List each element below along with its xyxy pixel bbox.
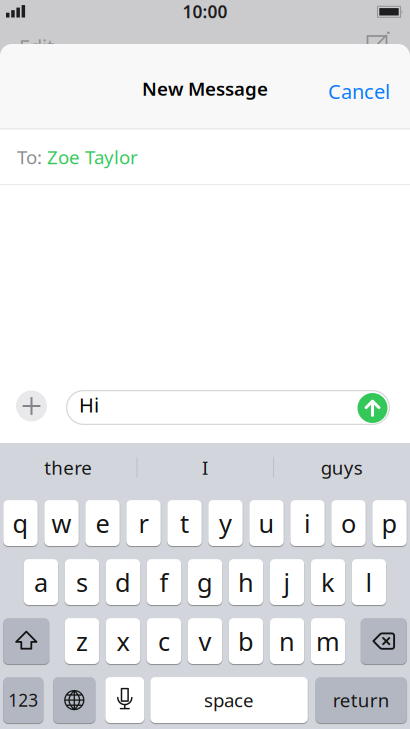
button[interactable]: g xyxy=(188,559,222,605)
button[interactable]: l xyxy=(352,559,386,605)
button[interactable]: j xyxy=(270,559,304,605)
staticText: b xyxy=(238,624,254,658)
button[interactable]: there xyxy=(3,445,133,489)
staticText: e xyxy=(95,506,109,540)
button[interactable]: More options xyxy=(16,390,47,421)
button[interactable]: Delete xyxy=(361,618,407,664)
staticText: x xyxy=(116,624,129,658)
staticText: t xyxy=(180,506,189,540)
staticText: Zoe Taylor xyxy=(47,145,138,169)
staticText: 10:00 xyxy=(182,0,227,23)
button[interactable]: Send xyxy=(357,393,387,423)
staticText: j xyxy=(283,565,290,599)
staticText: u xyxy=(258,506,274,540)
button[interactable]: r xyxy=(126,500,161,546)
button[interactable]: Hi xyxy=(66,390,390,425)
staticText: h xyxy=(238,565,254,599)
staticText: a xyxy=(34,565,48,599)
button[interactable]: space xyxy=(150,677,308,723)
button[interactable]: o xyxy=(331,500,366,546)
button[interactable]: b xyxy=(229,618,263,664)
staticText: n xyxy=(279,624,295,658)
button[interactable]: e xyxy=(85,500,120,546)
staticText: k xyxy=(321,565,335,599)
staticText: o xyxy=(341,506,356,540)
staticText: guys xyxy=(321,455,363,480)
staticText: z xyxy=(76,624,88,658)
staticText: i xyxy=(304,506,311,540)
button[interactable]: w xyxy=(44,500,79,546)
button[interactable]: Shift xyxy=(3,618,49,664)
button[interactable]: h xyxy=(229,559,263,605)
button[interactable]: n xyxy=(270,618,304,664)
staticText: w xyxy=(51,506,71,540)
button[interactable]: a xyxy=(24,559,58,605)
button[interactable]: t xyxy=(167,500,202,546)
staticText: Edit xyxy=(19,33,54,60)
staticText: To: xyxy=(17,145,42,169)
staticText: g xyxy=(197,565,213,599)
button[interactable]: d xyxy=(106,559,140,605)
button[interactable]: p xyxy=(372,500,407,546)
staticText: p xyxy=(381,506,397,540)
button[interactable]: f xyxy=(147,559,181,605)
button[interactable]: Next keyboard xyxy=(53,677,95,723)
button[interactable]: q xyxy=(3,500,38,546)
staticText: l xyxy=(365,565,372,599)
button[interactable]: Dictate xyxy=(105,677,144,723)
staticText: space xyxy=(204,688,254,712)
staticText: d xyxy=(115,565,131,599)
button[interactable]: u xyxy=(249,500,284,546)
button[interactable]: x xyxy=(106,618,140,664)
button[interactable]: i xyxy=(290,500,325,546)
button[interactable]: c xyxy=(147,618,181,664)
staticText: v xyxy=(198,624,211,658)
staticText: f xyxy=(159,565,168,599)
button[interactable]: v xyxy=(188,618,222,664)
button[interactable]: return xyxy=(316,677,407,723)
staticText: s xyxy=(76,565,88,599)
button[interactable]: I xyxy=(140,445,270,489)
staticText: y xyxy=(219,506,232,540)
staticText: 123 xyxy=(8,688,38,711)
button[interactable]: To: xyxy=(17,130,410,184)
staticText: Hi xyxy=(79,391,99,418)
button[interactable]: k xyxy=(311,559,345,605)
button[interactable]: z xyxy=(65,618,99,664)
staticText: New Message xyxy=(142,76,268,101)
staticText: q xyxy=(12,506,28,540)
staticText: m xyxy=(316,624,340,658)
staticText: return xyxy=(333,688,390,712)
staticText: r xyxy=(138,506,148,540)
staticText: I xyxy=(202,455,208,480)
button[interactable]: s xyxy=(65,559,99,605)
button[interactable]: guys xyxy=(277,445,407,489)
button[interactable]: m xyxy=(311,618,345,664)
staticText: Cancel xyxy=(328,78,390,105)
button[interactable]: Cancel xyxy=(328,78,390,105)
button[interactable]: Numbers xyxy=(3,677,43,723)
staticText: there xyxy=(44,455,92,480)
staticText: c xyxy=(158,624,170,658)
button[interactable]: y xyxy=(208,500,243,546)
